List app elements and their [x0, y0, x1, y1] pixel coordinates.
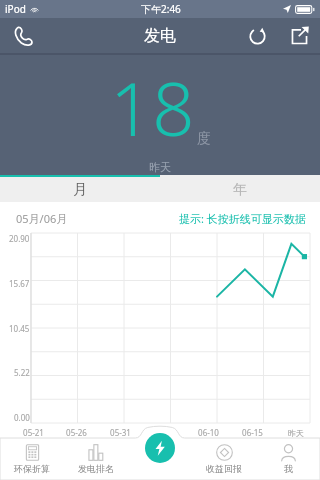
- staticText: 05-26: [66, 427, 87, 438]
- staticText: 月: [73, 181, 87, 199]
- staticText: 发电排名: [78, 463, 114, 474]
- staticText: 下午2:46: [141, 2, 181, 16]
- staticText: 15.67: [9, 278, 30, 289]
- staticText: 环保折算: [14, 463, 50, 474]
- button[interactable]: 我: [256, 438, 320, 480]
- button[interactable]: 年: [160, 177, 320, 202]
- staticText: 度: [197, 130, 211, 148]
- staticText: 05-31: [110, 427, 131, 438]
- staticText: 昨天: [149, 160, 171, 174]
- staticText: 06-15: [242, 427, 263, 438]
- staticText: 年: [233, 181, 247, 199]
- staticText: 昨天: [288, 428, 304, 438]
- staticText: 10.45: [9, 323, 30, 334]
- button[interactable]: 发电: [145, 433, 175, 463]
- staticText: 发电: [144, 26, 176, 46]
- staticText: 0.00: [14, 412, 30, 423]
- staticText: 提示: 长按折线可显示数据: [179, 211, 306, 226]
- staticText: 06-05: [154, 427, 175, 438]
- button[interactable]: 发电排名: [64, 438, 128, 480]
- button[interactable]: Share: [278, 18, 320, 53]
- staticText: 收益回报: [206, 463, 242, 474]
- staticText: 05月/06月: [16, 211, 68, 226]
- staticText: 20.90: [9, 233, 30, 244]
- staticText: 18: [110, 57, 195, 158]
- button[interactable]: 收益回报: [192, 438, 256, 480]
- staticText: 05-21: [23, 427, 44, 438]
- staticText: iPod: [5, 2, 26, 16]
- button[interactable]: 月: [0, 177, 160, 202]
- button[interactable]: Refresh: [236, 18, 278, 53]
- staticText: 我: [284, 463, 293, 474]
- button[interactable]: 环保折算: [0, 438, 64, 480]
- staticText: 06-10: [198, 427, 219, 438]
- staticText: 5.22: [14, 367, 30, 378]
- button[interactable]: Call: [0, 18, 46, 53]
